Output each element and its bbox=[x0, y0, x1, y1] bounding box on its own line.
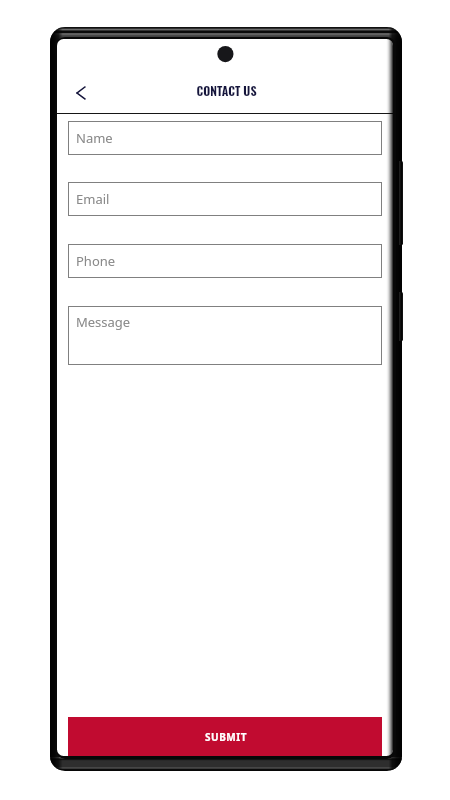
staticText: SUBMIT bbox=[205, 730, 248, 744]
staticText: Message bbox=[76, 313, 131, 331]
staticText: Name bbox=[76, 129, 113, 147]
button[interactable]: Back bbox=[66, 79, 94, 107]
staticText: CONTACT US bbox=[196, 82, 257, 100]
button[interactable]: Message bbox=[68, 306, 382, 365]
button[interactable]: Name bbox=[68, 121, 382, 155]
button[interactable]: SUBMIT bbox=[68, 717, 382, 756]
button[interactable]: Email bbox=[68, 182, 382, 216]
staticText: Email bbox=[76, 190, 110, 208]
staticText: Phone bbox=[76, 252, 116, 270]
button[interactable]: Phone bbox=[68, 244, 382, 278]
